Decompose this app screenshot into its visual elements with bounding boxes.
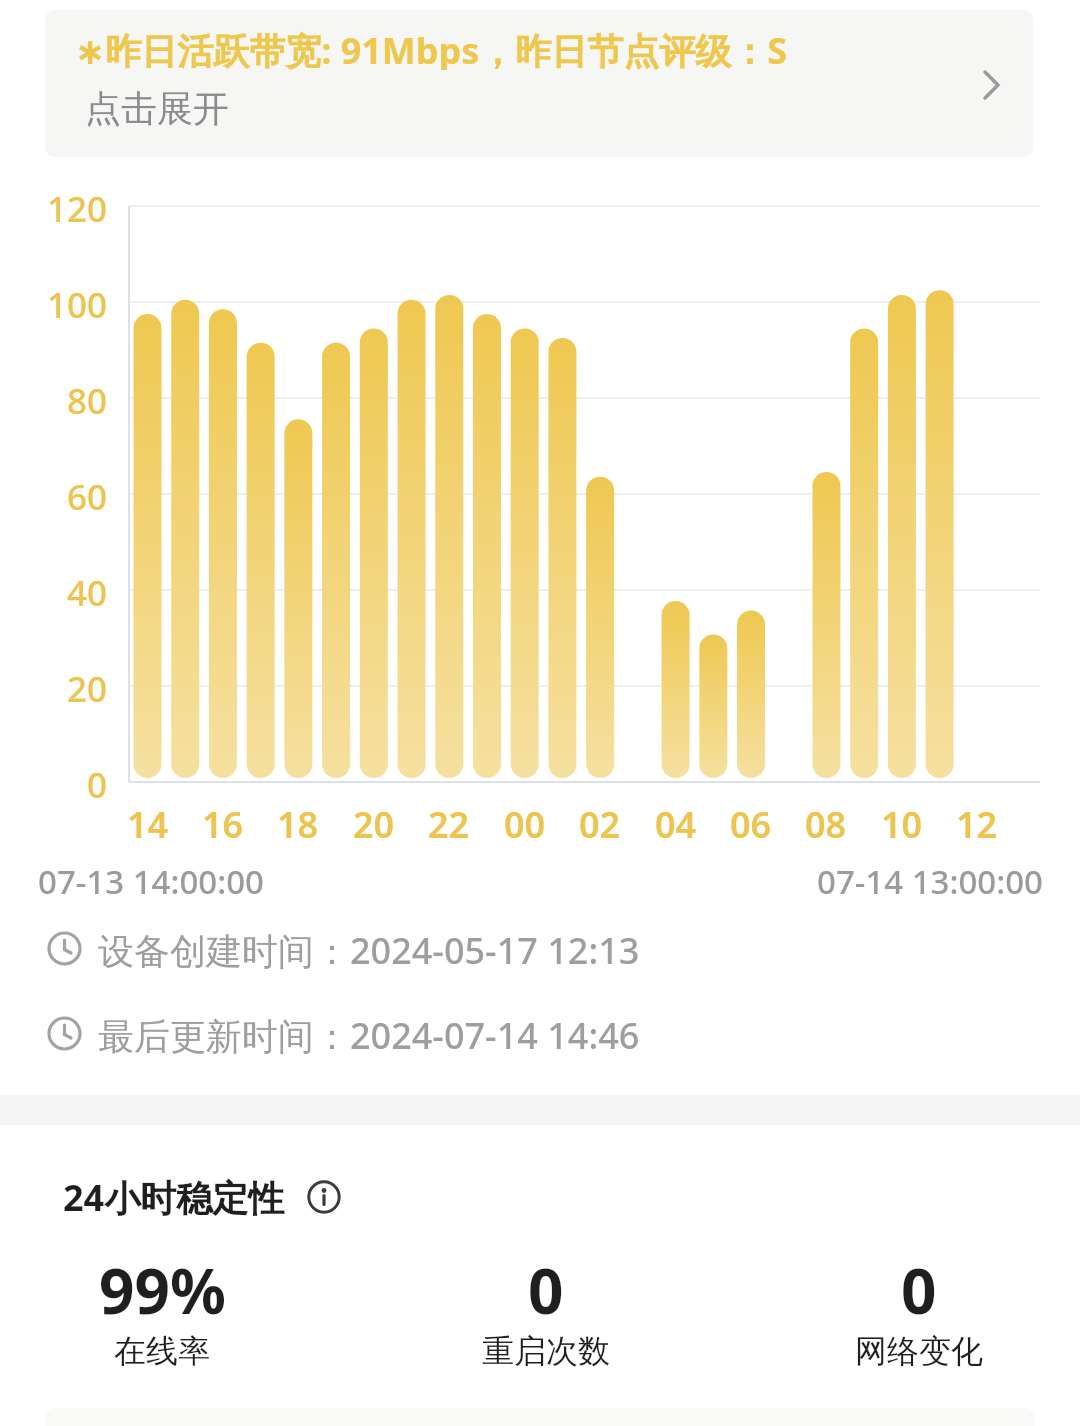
staticText: 18 xyxy=(277,800,319,844)
staticText: 80 xyxy=(67,377,108,419)
button[interactable] xyxy=(308,1181,340,1213)
staticText: 99% xyxy=(99,1248,226,1316)
staticText: 设备创建时间：2024-05-17 12:13 xyxy=(98,926,640,970)
staticText: 20 xyxy=(353,800,395,844)
staticText: 07-14 13:00:00 xyxy=(817,859,1043,903)
staticText: 00 xyxy=(504,800,546,844)
staticText: 12 xyxy=(956,800,998,844)
staticText: 0 xyxy=(528,1248,564,1316)
staticText: 14 xyxy=(127,800,169,844)
staticText: 08 xyxy=(805,800,847,844)
staticText: 0 xyxy=(87,761,108,803)
staticText: 06 xyxy=(730,800,772,844)
staticText: 10 xyxy=(881,800,923,844)
staticText: 重启次数 xyxy=(482,1331,610,1371)
staticText: 点击展开 xyxy=(85,86,229,130)
staticText: 最后更新时间：2024-07-14 14:46 xyxy=(98,1011,640,1055)
staticText: 16 xyxy=(202,800,244,844)
staticText: 网络变化 xyxy=(855,1331,983,1371)
staticText: 在线率 xyxy=(114,1331,210,1371)
staticText: 60 xyxy=(67,473,108,515)
staticText: 0 xyxy=(901,1248,937,1316)
staticText: 100 xyxy=(47,281,108,323)
staticText: 120 xyxy=(47,185,108,227)
staticText: 07-13 14:00:00 xyxy=(38,859,264,903)
staticText: 24小时稳定性 xyxy=(63,1173,285,1221)
staticText: 02 xyxy=(579,800,621,844)
staticText: 20 xyxy=(67,665,108,707)
staticText: 40 xyxy=(67,569,108,611)
staticText: 04 xyxy=(655,800,697,844)
button[interactable]: ∗昨日活跃带宽: 91Mbps，昨日节点评级：S xyxy=(45,10,1033,157)
staticText: 22 xyxy=(428,800,470,844)
staticText: ∗昨日活跃带宽: 91Mbps，昨日节点评级：S xyxy=(75,26,788,70)
